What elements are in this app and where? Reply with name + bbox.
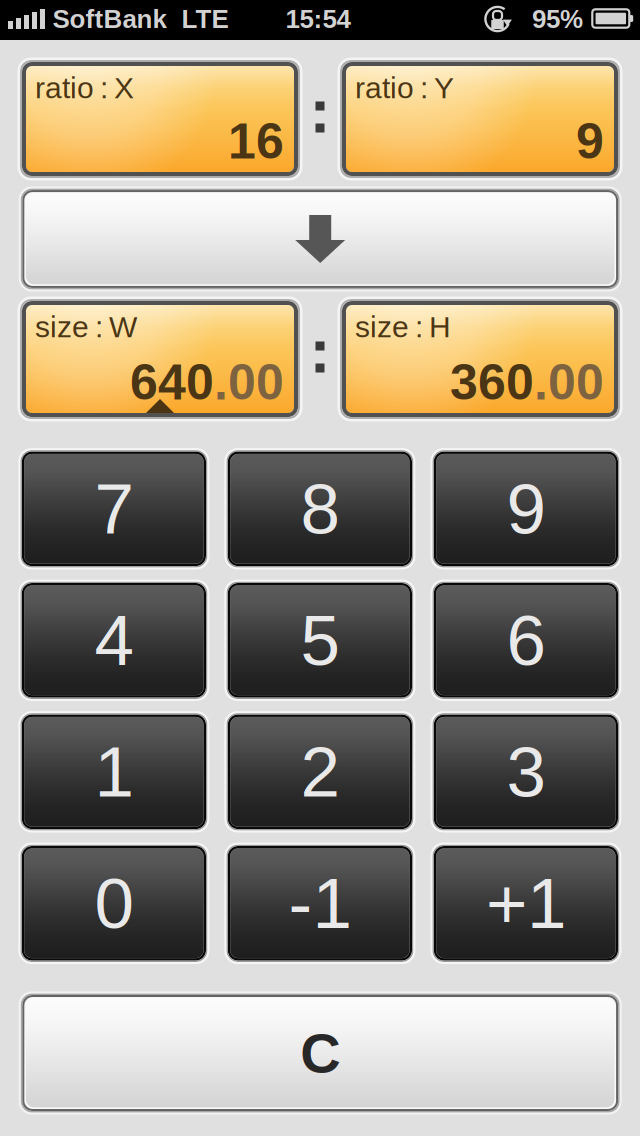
staticText: 15:54 <box>285 4 350 33</box>
button[interactable]: C <box>22 995 618 1111</box>
staticText: -1 <box>288 864 351 943</box>
staticText: .00 <box>534 354 604 410</box>
button[interactable]: 1 <box>22 714 206 829</box>
staticText: LTE <box>181 4 228 33</box>
staticText: 8 <box>300 469 339 548</box>
staticText: 95% <box>532 4 583 33</box>
button[interactable]: 9 <box>434 451 618 566</box>
button[interactable]: 4 <box>22 583 206 698</box>
staticText: 9 <box>576 113 604 169</box>
staticText: ratio : Y <box>355 71 454 104</box>
button[interactable]: 0 <box>22 846 206 961</box>
staticText: 0 <box>94 864 133 943</box>
staticText: 16 <box>228 113 284 169</box>
button[interactable]: 2 <box>228 714 412 829</box>
button[interactable]: -1 <box>228 846 412 961</box>
staticText: 3 <box>506 732 545 811</box>
staticText: C <box>300 1022 340 1084</box>
staticText: size : W <box>35 310 137 343</box>
button[interactable]: size : W <box>22 301 298 417</box>
button[interactable]: ratio : X <box>22 62 298 176</box>
staticText: 360 <box>450 354 534 410</box>
button[interactable]: ratio : Y <box>342 62 618 176</box>
staticText: .00 <box>214 354 284 410</box>
staticText: 640 <box>130 354 214 410</box>
button[interactable]: size : H <box>342 301 618 417</box>
button[interactable] <box>22 190 618 288</box>
staticText: 6 <box>506 601 545 680</box>
staticText: 7 <box>94 469 133 548</box>
staticText: 2 <box>300 732 339 811</box>
staticText: SoftBank <box>52 4 166 33</box>
staticText: 4 <box>94 601 133 680</box>
staticText: +1 <box>486 864 566 943</box>
button[interactable]: 3 <box>434 714 618 829</box>
button[interactable]: +1 <box>434 846 618 961</box>
button[interactable]: 8 <box>228 451 412 566</box>
staticText: 9 <box>506 469 545 548</box>
staticText: 1 <box>94 732 133 811</box>
button[interactable]: 7 <box>22 451 206 566</box>
button[interactable]: 6 <box>434 583 618 698</box>
staticText: 5 <box>300 601 339 680</box>
staticText: size : H <box>355 310 451 343</box>
staticText: ratio : X <box>35 71 134 104</box>
button[interactable]: 5 <box>228 583 412 698</box>
